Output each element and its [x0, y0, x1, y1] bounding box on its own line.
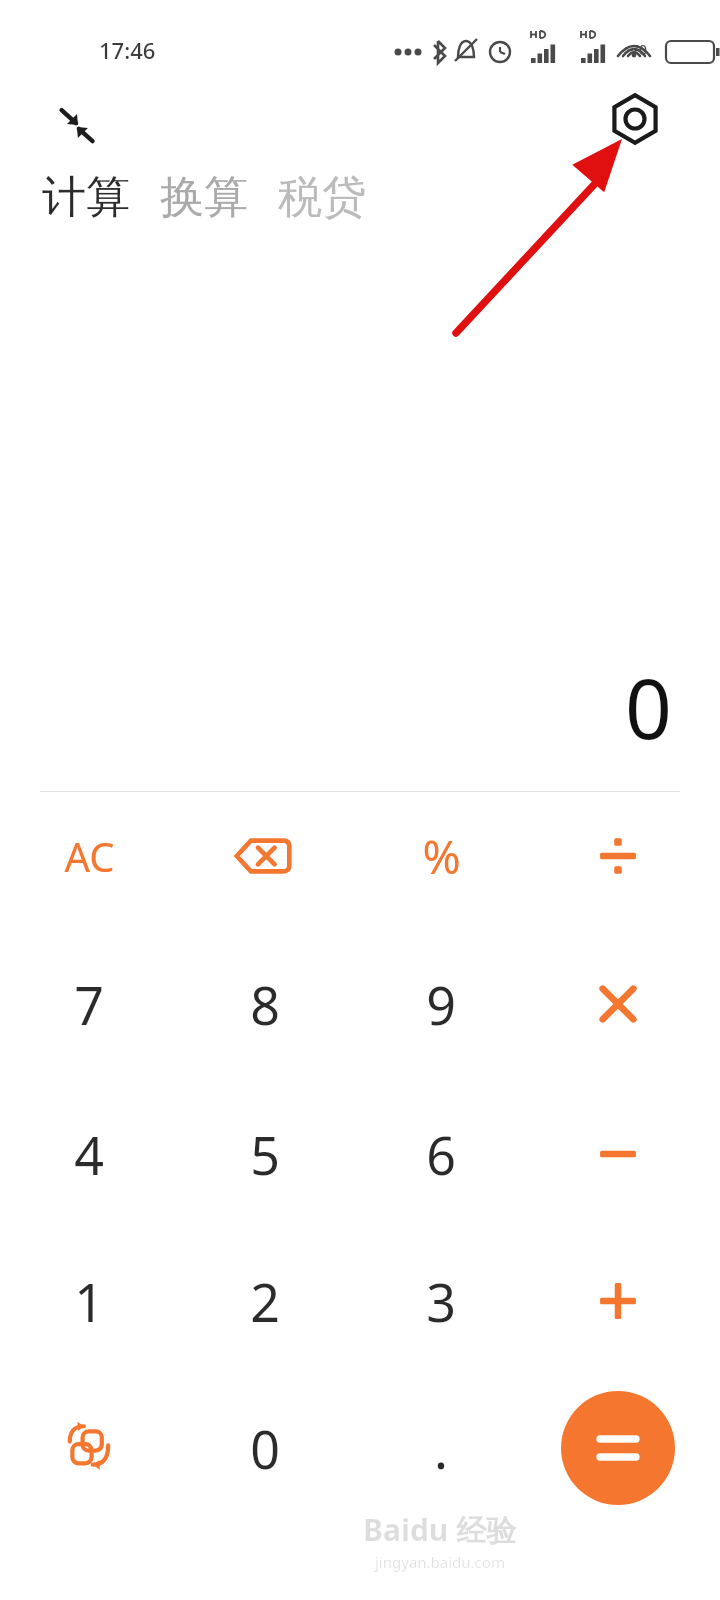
button[interactable]: 4	[14, 1089, 164, 1219]
staticText: 17:46	[99, 35, 156, 65]
staticText: %	[422, 825, 461, 888]
staticText: 8	[250, 969, 280, 1040]
staticText: 3	[426, 1266, 456, 1337]
button[interactable]: 0	[190, 1383, 340, 1513]
button[interactable]: Multiply	[543, 939, 693, 1069]
button[interactable]: .	[366, 1383, 516, 1513]
staticText: .	[434, 1413, 448, 1484]
button[interactable]: 8	[190, 939, 340, 1069]
button[interactable]: 7	[14, 939, 164, 1069]
staticText: 2	[250, 1266, 280, 1337]
staticText: 70	[631, 40, 648, 59]
staticText: 1	[74, 1266, 104, 1337]
button[interactable]: Plus	[543, 1236, 693, 1366]
staticText: jingyan.baidu.com	[375, 1552, 505, 1572]
button[interactable]: 1	[14, 1236, 164, 1366]
button[interactable]: Collapse	[40, 90, 112, 162]
button[interactable]: %	[366, 791, 516, 921]
button[interactable]: AC	[14, 791, 164, 921]
staticText: 6	[426, 1119, 456, 1190]
staticText: 5	[250, 1119, 280, 1190]
staticText: 换算	[160, 170, 248, 225]
button[interactable]: 计算	[40, 168, 132, 227]
button[interactable]: Minus	[543, 1089, 693, 1219]
button[interactable]: Divide	[543, 791, 693, 921]
button[interactable]: 税贷	[276, 168, 368, 227]
button[interactable]: 2	[190, 1236, 340, 1366]
button[interactable]: 3	[366, 1236, 516, 1366]
button[interactable]: 换算	[158, 168, 250, 227]
staticText: 计算	[42, 170, 130, 225]
staticText: 4	[74, 1119, 104, 1190]
button[interactable]: Backspace	[190, 791, 340, 921]
staticText: AC	[64, 829, 115, 883]
staticText: Baidu 经验	[363, 1509, 517, 1550]
button[interactable]: 9	[366, 939, 516, 1069]
staticText: 7	[74, 969, 104, 1040]
button[interactable]: Equals	[561, 1391, 675, 1505]
staticText: 0	[625, 651, 672, 763]
staticText: 0	[250, 1413, 280, 1484]
button[interactable]: 5	[190, 1089, 340, 1219]
button[interactable]: Convert	[14, 1383, 164, 1513]
button[interactable]: Settings	[602, 86, 668, 152]
button[interactable]: 6	[366, 1089, 516, 1219]
staticText: 税贷	[278, 170, 366, 225]
staticText: 9	[426, 969, 456, 1040]
